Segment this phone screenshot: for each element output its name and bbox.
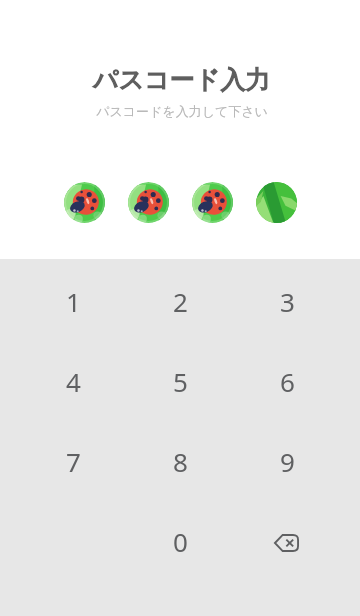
button[interactable]: 9 — [234, 421, 341, 501]
button[interactable]: 2 — [127, 261, 234, 341]
button[interactable]: 1 — [19, 261, 127, 341]
staticText: 4 — [66, 364, 81, 399]
staticText: 8 — [173, 444, 188, 479]
staticText: 0 — [173, 524, 188, 559]
button[interactable]: 5 — [127, 341, 234, 421]
button[interactable]: 7 — [19, 421, 127, 501]
staticText: 2 — [173, 284, 188, 319]
staticText: 6 — [280, 364, 295, 399]
button[interactable]: 4 — [19, 341, 127, 421]
staticText: パスコード入力 — [2, 64, 360, 95]
button[interactable]: 8 — [127, 421, 234, 501]
button[interactable]: 6 — [234, 341, 341, 421]
button[interactable]: 3 — [234, 261, 341, 341]
staticText: 7 — [66, 444, 81, 479]
staticText: 3 — [280, 284, 295, 319]
staticText: パスコード入力 — [2, 64, 360, 95]
staticText: 5 — [173, 364, 188, 399]
staticText: 1 — [66, 284, 81, 319]
staticText: 9 — [280, 444, 295, 479]
button[interactable]: 0 — [127, 501, 234, 581]
button[interactable]: Delete — [234, 501, 341, 581]
staticText: パスコードを入力して下さい — [2, 103, 360, 119]
